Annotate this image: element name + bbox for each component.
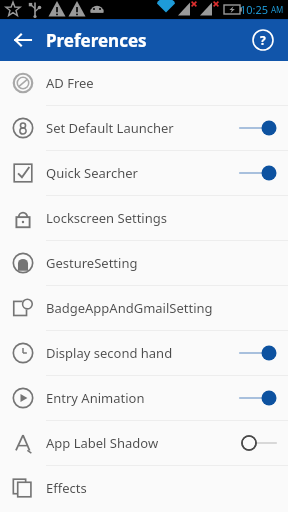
button[interactable]: Quick Searcher toggle <box>238 161 278 185</box>
staticText: Entry Animation <box>46 389 145 407</box>
button[interactable]: BadgeAppAndGmailSetting <box>0 286 288 330</box>
button[interactable]: Quick Searcher <box>0 151 288 195</box>
staticText: Preferences <box>46 29 147 52</box>
staticText: Lockscreen Settings <box>46 209 167 227</box>
staticText: AD Free <box>46 74 94 92</box>
button[interactable]: AD Free <box>0 61 288 105</box>
staticText: Set Default Launcher <box>46 119 174 137</box>
staticText: AM <box>271 4 284 15</box>
staticText: Quick Searcher <box>46 164 138 182</box>
staticText: GestureSetting <box>46 254 138 272</box>
button[interactable]: App Label Shadow toggle <box>238 431 278 455</box>
button[interactable]: Set Default Launcher toggle <box>238 116 278 140</box>
staticText: App Label Shadow <box>46 434 159 452</box>
button[interactable]: Display second hand toggle <box>238 341 278 365</box>
button[interactable]: Lockscreen Settings <box>0 196 288 240</box>
button[interactable]: Entry Animation <box>0 376 288 420</box>
button[interactable]: Back <box>6 23 40 57</box>
button[interactable]: Display second hand <box>0 331 288 375</box>
staticText: Display second hand <box>46 344 173 362</box>
staticText: 10:25 <box>240 2 269 17</box>
button[interactable]: Set Default Launcher <box>0 106 288 150</box>
staticText: ? <box>260 32 266 48</box>
staticText: BadgeAppAndGmailSetting <box>46 299 213 317</box>
button[interactable]: App Label Shadow <box>0 421 288 465</box>
button[interactable]: Entry Animation toggle <box>238 386 278 410</box>
button[interactable]: GestureSetting <box>0 241 288 285</box>
staticText: Effects <box>46 479 87 497</box>
button[interactable]: Effects <box>0 466 288 510</box>
button[interactable]: Help <box>246 23 280 57</box>
